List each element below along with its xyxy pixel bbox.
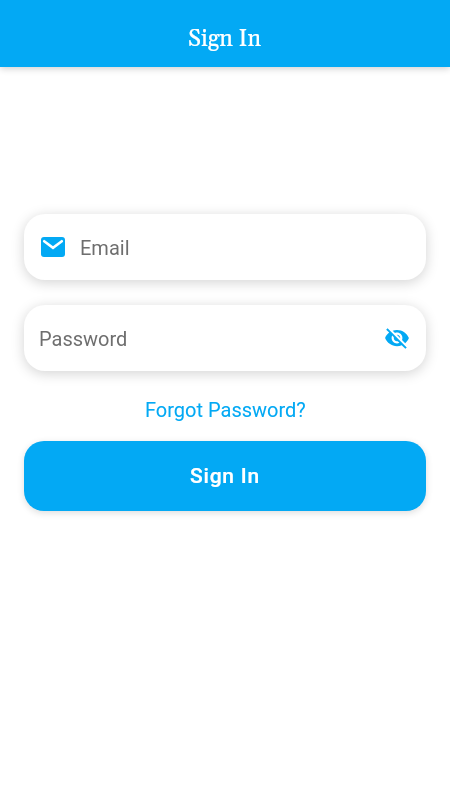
staticText: Sign In [190, 464, 261, 489]
button[interactable]: Forgot Password? [145, 398, 306, 421]
staticText: Email [80, 236, 130, 259]
button[interactable]: Email [24, 214, 426, 280]
button[interactable]: Sign In [24, 441, 426, 511]
button[interactable]: Password [24, 305, 426, 371]
button[interactable] [384, 325, 410, 351]
staticText: Password [39, 327, 128, 350]
staticText: Sign In [188, 25, 262, 54]
